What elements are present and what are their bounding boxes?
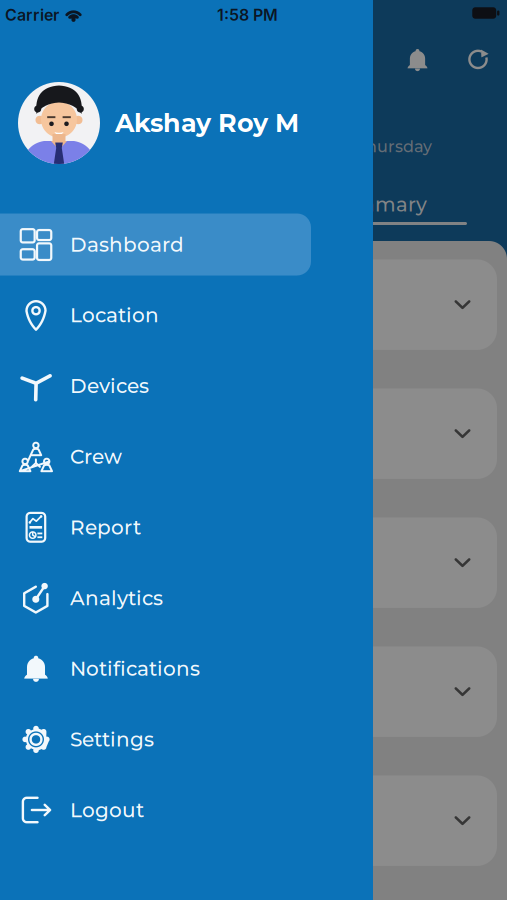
button[interactable]: Profile xyxy=(0,82,373,164)
button[interactable]: Crew xyxy=(0,426,373,488)
staticText: Analytics xyxy=(70,586,163,610)
button[interactable]: Location xyxy=(0,284,373,346)
staticText: Summary xyxy=(329,193,427,216)
staticText: Notifications xyxy=(70,656,200,681)
button[interactable]: Devices xyxy=(0,355,373,417)
button[interactable]: Expand section xyxy=(9,646,497,737)
staticText: Akshay Roy M xyxy=(115,108,299,138)
button[interactable]: Dashboard xyxy=(0,213,373,275)
staticText: 1:58 PM xyxy=(217,5,278,25)
staticText: Carrier xyxy=(5,5,59,25)
button[interactable]: Expand section xyxy=(9,517,497,608)
staticText: Location xyxy=(70,303,159,327)
button[interactable]: Logout xyxy=(0,779,373,841)
button[interactable]: Expand section xyxy=(9,259,497,350)
button[interactable]: Analytics xyxy=(0,567,373,629)
button[interactable]: Notifications xyxy=(0,638,373,700)
button[interactable]: Report xyxy=(0,496,373,558)
staticText: Devices xyxy=(70,374,149,398)
staticText: 17 June, Thursday xyxy=(289,137,432,156)
staticText: Settings xyxy=(70,727,154,752)
button[interactable]: Expand section xyxy=(9,775,497,866)
button[interactable]: Expand section xyxy=(9,388,497,479)
button[interactable]: Settings xyxy=(0,708,373,770)
button[interactable]: Notifications xyxy=(397,40,437,80)
button[interactable]: Refresh xyxy=(458,39,498,79)
staticText: Report xyxy=(70,515,141,539)
staticText: Dashboard xyxy=(70,232,184,257)
button[interactable]: Summary xyxy=(329,193,427,216)
staticText: Logout xyxy=(70,798,144,822)
staticText: Crew xyxy=(70,444,122,469)
